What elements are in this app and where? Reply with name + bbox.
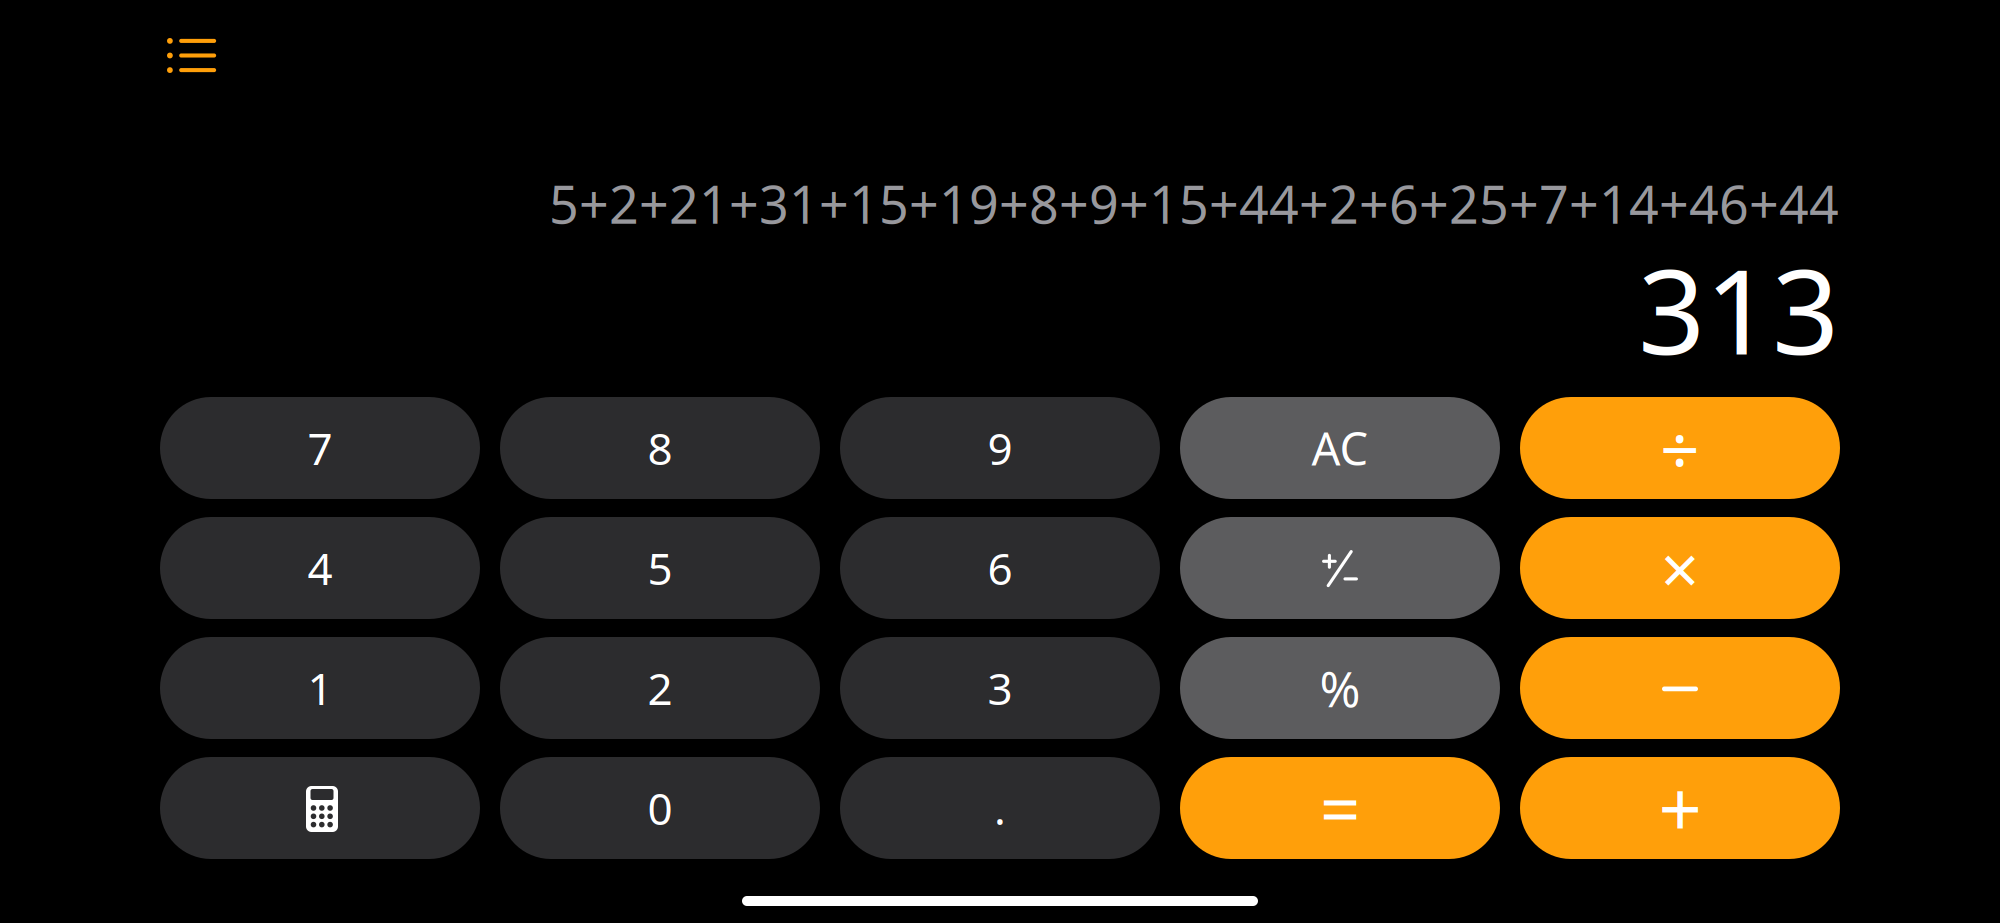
button[interactable]: . (840, 757, 1160, 859)
button[interactable]: Percent (1180, 637, 1500, 739)
button[interactable]: 1 (160, 637, 480, 739)
button[interactable]: All clear (1180, 397, 1500, 499)
button[interactable]: Calculator (160, 757, 480, 859)
button[interactable]: 0 (500, 757, 820, 859)
staticText: 5+2+21+31+15+19+8+9+15+44+2+6+25+7+14+46… (549, 169, 1839, 238)
button[interactable]: History (153, 24, 231, 87)
button[interactable]: Add (1520, 757, 1840, 859)
button[interactable]: 7 (160, 397, 480, 499)
button[interactable]: 5 (500, 517, 820, 619)
staticText: 2 (647, 659, 672, 717)
button[interactable]: Equals (1180, 757, 1500, 859)
button[interactable]: Subtract (1520, 637, 1840, 739)
staticText: + (1658, 757, 1701, 858)
staticText: × (1660, 523, 1699, 613)
staticText: = (1320, 761, 1360, 855)
button[interactable]: 9 (840, 397, 1160, 499)
staticText: 313 (1638, 231, 1839, 387)
staticText: 3 (987, 659, 1012, 717)
staticText: ÷ (1660, 402, 1700, 494)
staticText: 5 (647, 539, 672, 597)
button[interactable]: 4 (160, 517, 480, 619)
staticText: AC (1311, 418, 1368, 478)
staticText: 1 (307, 659, 332, 717)
staticText: . (994, 779, 1006, 837)
staticText: 7 (307, 419, 332, 477)
button[interactable]: Divide (1520, 397, 1840, 499)
button[interactable]: 3 (840, 637, 1160, 739)
button[interactable]: 6 (840, 517, 1160, 619)
button[interactable]: 8 (500, 397, 820, 499)
staticText: % (1319, 655, 1360, 721)
button[interactable]: Plus minus (1180, 517, 1500, 619)
staticText: 9 (987, 419, 1012, 477)
staticText: 0 (647, 779, 672, 837)
staticText: 8 (647, 419, 672, 477)
staticText: 4 (307, 539, 332, 597)
button[interactable]: Multiply (1520, 517, 1840, 619)
button[interactable]: 2 (500, 637, 820, 739)
staticText: 6 (987, 539, 1012, 597)
